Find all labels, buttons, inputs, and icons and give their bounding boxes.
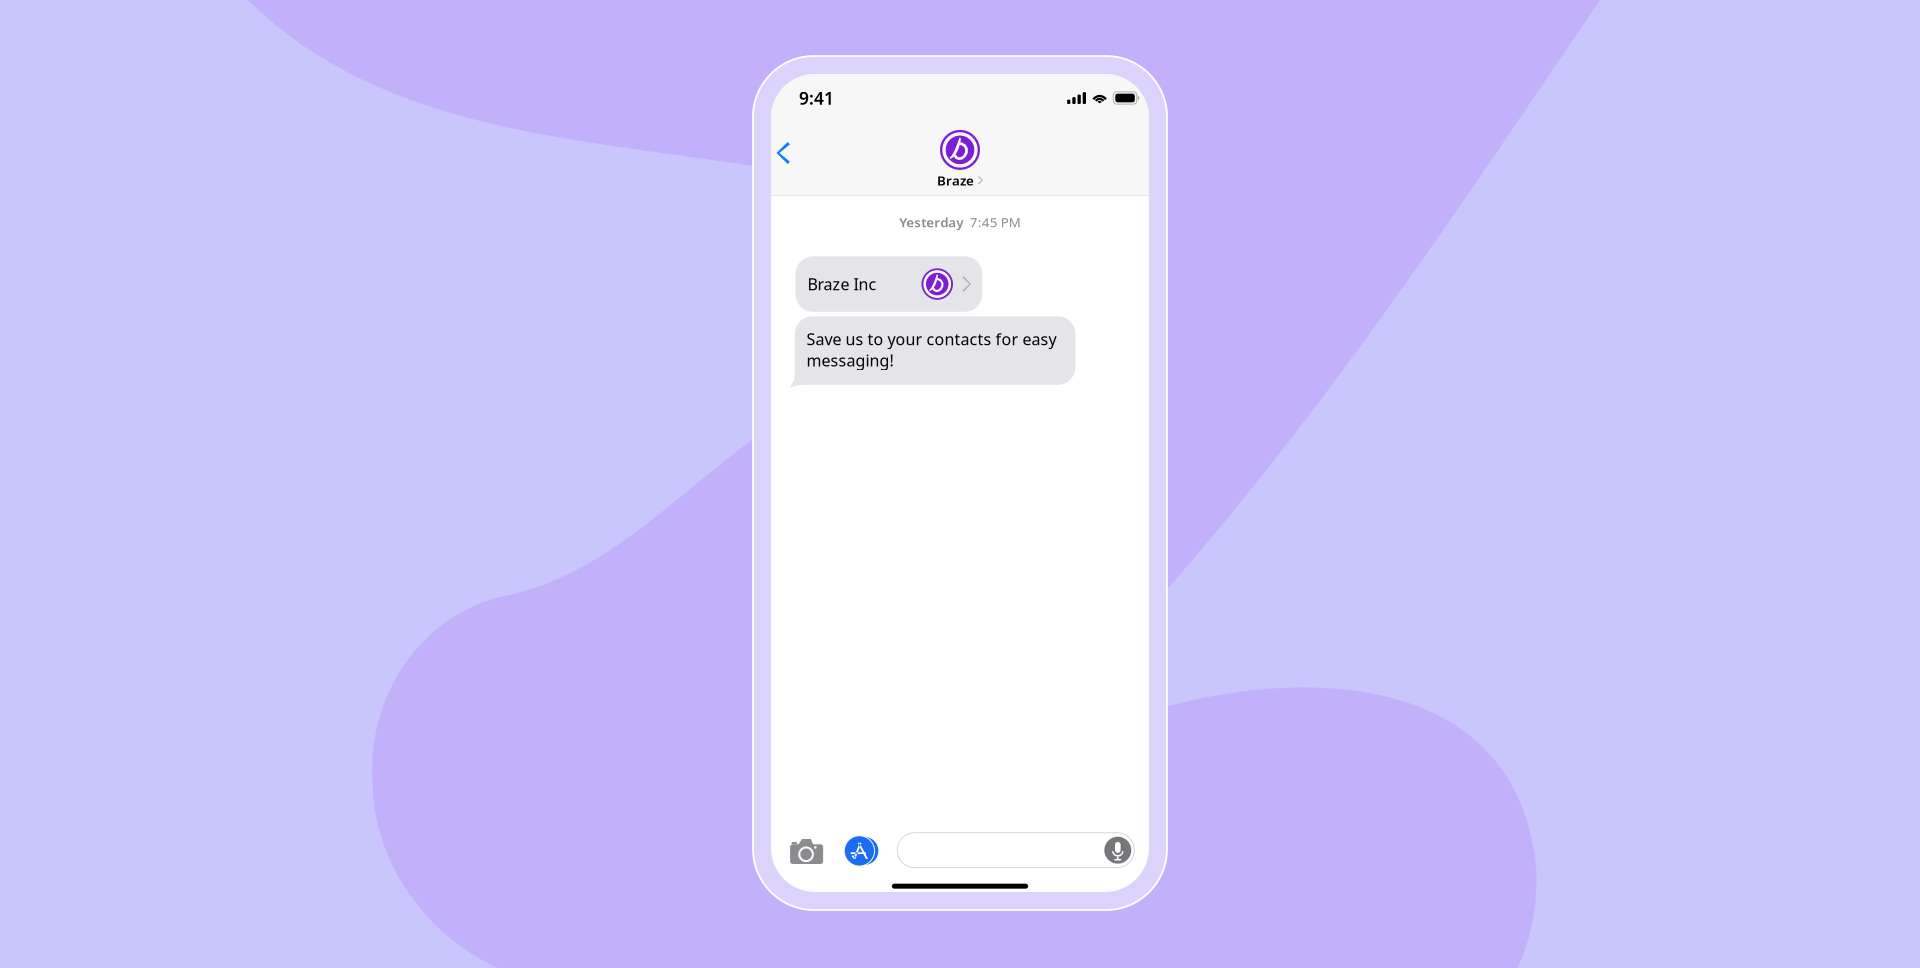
button[interactable]: Back bbox=[771, 122, 809, 171]
button[interactable]: Take photo bbox=[771, 833, 804, 859]
staticText: 9:41 bbox=[799, 86, 834, 109]
staticText: 7:45 PM bbox=[970, 213, 1021, 231]
staticText: Yesterday bbox=[899, 213, 963, 231]
staticText: Save us to your contacts for easy messag… bbox=[806, 328, 1056, 371]
button[interactable]: Apps bbox=[771, 833, 804, 863]
staticText: Braze bbox=[937, 171, 974, 189]
staticText: Braze Inc bbox=[807, 273, 876, 295]
button[interactable]: iMessage bbox=[771, 833, 1008, 868]
button[interactable]: Braze Inc bbox=[796, 256, 982, 312]
button[interactable]: Braze bbox=[771, 122, 911, 186]
